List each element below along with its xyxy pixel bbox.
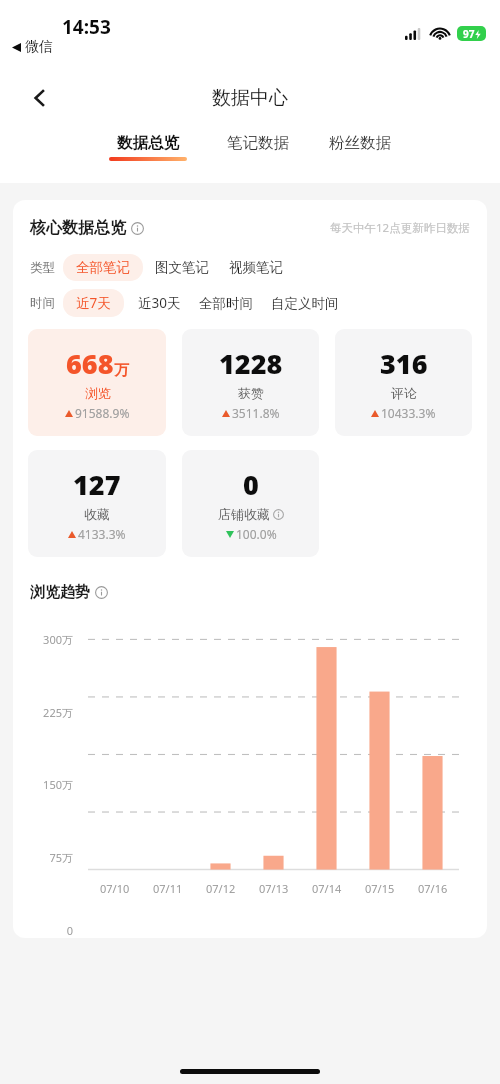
staticText: 数据中心 [212,86,288,110]
staticText: 07/14 [312,881,342,896]
staticText: 店铺收藏 [218,506,270,522]
staticText: 视频笔记 [229,259,283,276]
staticText: 75万 [13,850,73,865]
button[interactable]: 视频笔记 [225,254,287,281]
button[interactable]: 自定义时间 [267,290,343,317]
staticText: 668 [66,345,114,382]
button[interactable]: 粉丝数据 [327,133,393,161]
staticText: 评论 [391,385,417,401]
button[interactable]: 近30天 [134,289,185,317]
staticText: 微信 [25,38,53,56]
staticText: 全部时间 [199,295,253,312]
staticText: 获赞 [238,385,264,401]
staticText: 浏览 [85,385,111,401]
staticText: 07/16 [418,881,448,896]
staticText: 100.0% [236,526,277,542]
staticText: 图文笔记 [155,259,209,276]
staticText: 14:53 [62,14,111,40]
staticText: 全部笔记 [76,259,130,276]
button[interactable]: 笔记数据 [225,133,291,161]
staticText: 类型 [30,260,55,276]
staticText: 316 [380,345,428,382]
staticText: 07/12 [206,881,236,896]
staticText: 97 [463,27,475,41]
staticText: 核心数据总览 [30,218,126,238]
staticText: 笔记数据 [227,133,289,153]
staticText: 10433.3% [381,405,436,421]
staticText: 150万 [13,777,73,792]
staticText: 07/10 [100,881,130,896]
staticText: 07/13 [259,881,289,896]
button[interactable]: 全部笔记 [63,254,143,281]
staticText: 225万 [13,705,73,720]
button[interactable]: 全部时间 [195,290,257,317]
button[interactable]: 近7天 [63,289,124,317]
staticText: 数据总览 [117,133,179,153]
staticText: 91588.9% [75,405,130,421]
staticText: 浏览趋势 [30,583,90,602]
staticText: 07/15 [365,881,395,896]
button[interactable]: 668 [28,329,166,436]
staticText: 自定义时间 [271,295,339,312]
staticText: 300万 [13,632,73,647]
staticText: 3511.8% [232,405,280,421]
button[interactable]: 0 [182,450,319,557]
staticText: 0 [13,923,73,938]
staticText: 近7天 [76,294,111,312]
staticText: 1228 [219,345,283,382]
staticText: 07/11 [153,881,183,896]
staticText: 时间 [30,295,55,311]
button[interactable]: 图文笔记 [151,254,213,281]
button[interactable]: 1228 [182,329,319,436]
staticText: 4133.3% [78,526,126,542]
button[interactable]: 127 [28,450,166,557]
staticText: 万 [114,361,129,380]
button[interactable]: Back [18,76,62,120]
staticText: 粉丝数据 [329,133,391,153]
staticText: 收藏 [84,506,110,522]
button[interactable]: 316 [335,329,472,436]
staticText: 0 [243,466,259,503]
staticText: 每天中午12点更新昨日数据 [330,220,470,236]
staticText: 近30天 [138,294,181,312]
staticText: 127 [73,466,121,503]
button[interactable]: 数据总览 [107,133,189,161]
